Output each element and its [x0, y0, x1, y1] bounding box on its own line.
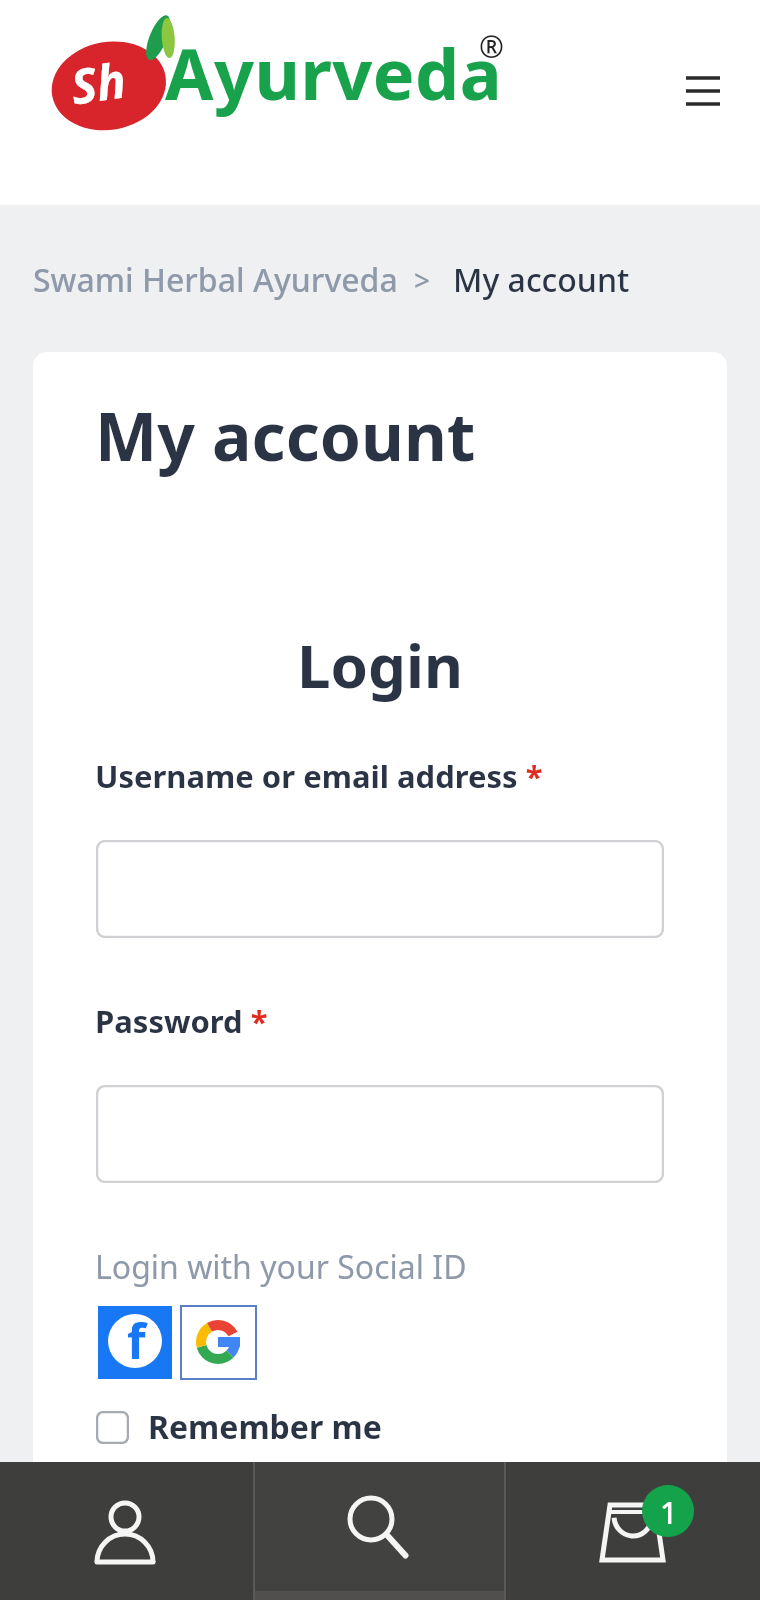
staticText: Sh [67, 46, 130, 118]
staticText: My account [453, 258, 630, 302]
button[interactable] [181, 1306, 256, 1379]
staticText: Ayurveda [165, 25, 503, 120]
staticText: Login [0, 624, 760, 706]
button[interactable]: Remember me [96, 1405, 382, 1449]
staticText: 1 [660, 1492, 678, 1533]
button[interactable] [96, 840, 664, 938]
button[interactable]: f [98, 1306, 172, 1379]
staticText: Login with your Social ID [95, 1245, 467, 1289]
staticText: ® [479, 26, 504, 67]
staticText: Remember me [148, 1405, 382, 1449]
button[interactable]: Swami Herbal Ayurveda [33, 258, 630, 302]
button[interactable] [253, 1462, 506, 1600]
button[interactable]: 1 [506, 1462, 760, 1600]
staticText: > [414, 261, 431, 299]
staticText: Swami Herbal Ayurveda [33, 258, 398, 302]
staticText: Password * [95, 1000, 268, 1042]
staticText: My account [95, 390, 476, 480]
staticText: Username or email address * [95, 755, 543, 797]
button[interactable] [672, 62, 734, 120]
button[interactable] [0, 1462, 253, 1600]
button[interactable]: Sh [46, 14, 516, 139]
staticText: f [127, 1308, 146, 1373]
button[interactable] [96, 1085, 664, 1183]
